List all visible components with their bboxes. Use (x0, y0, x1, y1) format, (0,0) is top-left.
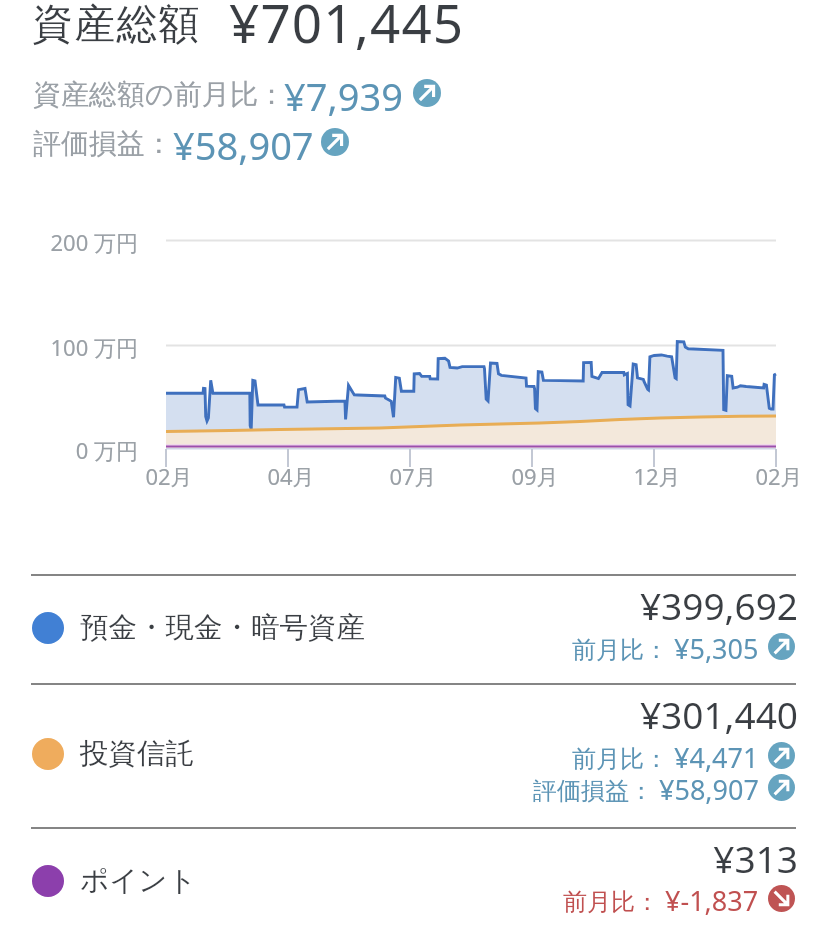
staticText: ¥7,939 (284, 70, 403, 122)
staticText: 資産総額 (32, 0, 201, 51)
staticText: ¥301,440 (300, 689, 798, 739)
staticText: 前月比： (563, 887, 659, 917)
button[interactable]: 預金・現金・暗号資産 (31, 576, 796, 683)
staticText: 0 万円 (0, 435, 138, 465)
staticText: ポイント (80, 863, 197, 899)
staticText: ¥-1,837 (665, 882, 759, 919)
staticText: 資産総額の前月比： (33, 77, 286, 112)
staticText: 12月 (617, 461, 697, 491)
staticText: ¥58,907 (173, 119, 314, 171)
button[interactable]: 投資信託 (31, 685, 796, 826)
staticText: 評価損益： (533, 776, 653, 806)
staticText: ¥58,907 (659, 771, 759, 808)
staticText: ¥5,305 (674, 630, 759, 667)
staticText: 07月 (373, 461, 453, 491)
staticText: 02月 (739, 461, 819, 491)
button[interactable]: ポイント (31, 829, 796, 926)
staticText: 評価損益： (33, 126, 173, 161)
staticText: 投資信託 (80, 736, 194, 772)
staticText: 前月比： (572, 744, 668, 774)
button[interactable]: Increase (321, 128, 349, 156)
staticText: 100 万円 (0, 332, 138, 362)
staticText: ¥313 (300, 833, 798, 883)
button[interactable]: Increase (768, 742, 795, 769)
staticText: 09月 (495, 461, 575, 491)
button[interactable]: Increase (768, 633, 795, 660)
button[interactable]: Decrease (768, 885, 795, 912)
button[interactable]: Increase (413, 79, 441, 107)
staticText: 前月比： (572, 635, 668, 665)
staticText: 200 万円 (0, 227, 138, 257)
staticText: ¥399,692 (300, 580, 798, 630)
staticText: 04月 (251, 461, 331, 491)
button[interactable]: 資産総額 (32, 0, 201, 51)
staticText: ¥4,471 (674, 739, 759, 776)
staticText: ¥701,445 (229, 0, 465, 58)
staticText: 02月 (129, 461, 209, 491)
button[interactable]: Increase (768, 774, 795, 801)
staticText: 預金・現金・暗号資産 (80, 610, 365, 646)
